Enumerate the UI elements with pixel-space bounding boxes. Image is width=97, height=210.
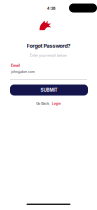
staticText: 4:28 [47,6,55,11]
button[interactable]: SUBMIT [10,84,88,95]
staticText: Forgot Password? [26,42,70,49]
staticText: Login [52,102,61,105]
staticText: SUBMIT [40,87,57,93]
button[interactable]: Go Back. [0,100,97,107]
staticText: Email [11,63,20,68]
staticText: Enter your email below [30,53,67,57]
staticText: Go Back. [36,102,50,105]
staticText: john@doe.com [11,70,35,74]
